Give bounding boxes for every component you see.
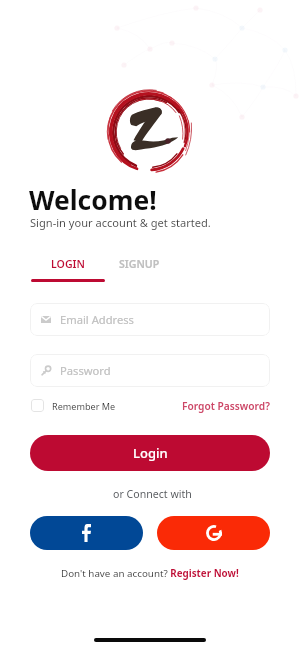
staticText: Password: [60, 363, 111, 378]
staticText: Don't have an account? Register Now!: [61, 567, 239, 580]
button[interactable]: Password: [30, 354, 270, 387]
button[interactable]: Email Address: [30, 303, 270, 336]
staticText: LOGIN: [51, 257, 85, 271]
button[interactable]: Remember Me: [31, 399, 116, 412]
staticText: SIGNUP: [119, 257, 160, 271]
button[interactable]: Sign in with Google: [157, 516, 270, 550]
button[interactable]: Don't have an account? Register Now!: [61, 567, 239, 580]
button[interactable]: SIGNUP: [105, 256, 173, 272]
staticText: or Connect with: [113, 487, 192, 501]
staticText: Sign-in your account & get started.: [30, 215, 211, 230]
button[interactable]: LOGIN: [31, 256, 105, 272]
button[interactable]: Login: [30, 435, 270, 471]
staticText: Login: [133, 444, 168, 462]
button[interactable]: Sign in with Facebook: [30, 516, 143, 550]
staticText: Forgot Password?: [182, 399, 270, 413]
staticText: Remember Me: [52, 400, 116, 412]
staticText: Welcome!: [29, 182, 157, 218]
staticText: Email Address: [60, 312, 134, 327]
button[interactable]: Forgot Password?: [182, 399, 270, 413]
